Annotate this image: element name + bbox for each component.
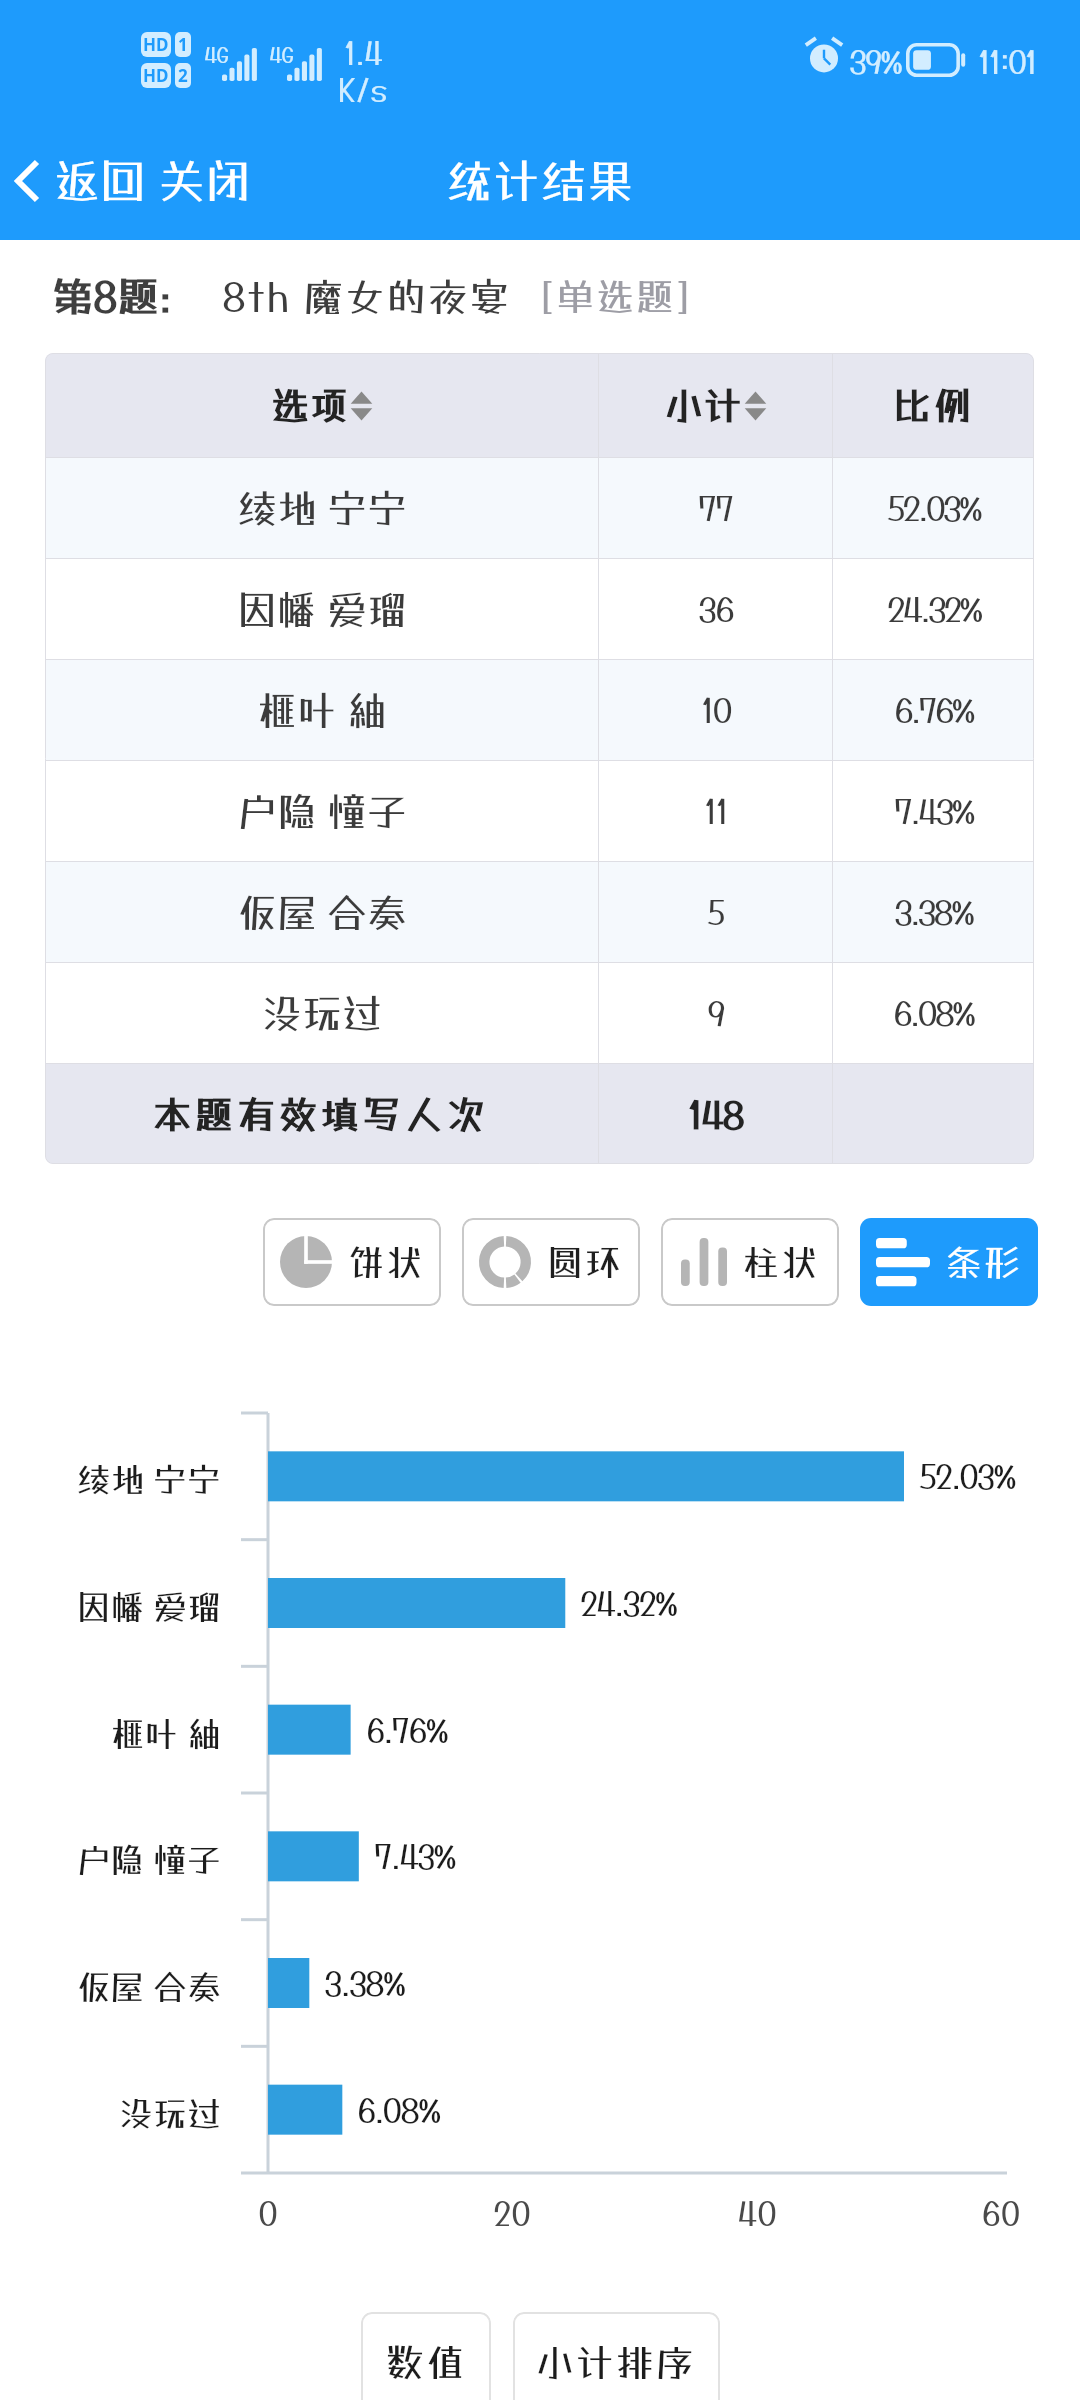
staticText: 52.03% [887, 488, 981, 528]
staticText: 7.43% [894, 791, 973, 831]
staticText: 条形 [946, 1241, 1023, 1283]
button[interactable]: 仮屋 合奏 [45, 862, 1034, 962]
staticText: 3.38% [894, 892, 973, 932]
staticText: 统计结果 [446, 154, 634, 208]
staticText: 圆环 [547, 1241, 624, 1283]
button[interactable]: 返回 [0, 142, 156, 220]
button[interactable]: 小计 [599, 353, 832, 457]
staticText: 24.32% [887, 589, 981, 629]
staticText: 因幡 爱瑠 [237, 586, 407, 633]
button[interactable]: 关闭 [149, 144, 261, 218]
staticText: 8th 魔女的夜宴 [222, 273, 511, 320]
staticText: HD [143, 64, 169, 87]
staticText: K/s [338, 72, 387, 109]
button[interactable]: 圆环 [462, 1218, 640, 1306]
button[interactable]: 绫地 宁宁 [45, 458, 1034, 558]
staticText: 11 [704, 791, 727, 831]
staticText: 户隐 憧子 [237, 788, 407, 835]
staticText: 仮屋 合奏 [21, 1967, 221, 2007]
staticText: 返回 [54, 154, 146, 208]
staticText: HD [143, 33, 169, 56]
staticText: 0 [228, 2194, 308, 2233]
button[interactable]: 榧叶 紬 [45, 660, 1034, 760]
staticText: 榧叶 紬 [257, 687, 387, 734]
other: Battery [906, 43, 968, 77]
staticText: 小计排序 [536, 2340, 697, 2385]
staticText: 比例 [894, 383, 973, 428]
staticText: 绫地 宁宁 [237, 485, 407, 532]
staticText: 4G [269, 41, 294, 67]
staticText: 6.76% [366, 1711, 447, 1750]
staticText: 20 [472, 2194, 552, 2233]
button[interactable]: 没玩过 [45, 963, 1034, 1063]
button[interactable]: 条形 [860, 1218, 1038, 1306]
staticText: 5 [707, 892, 724, 932]
other: Alarm [804, 36, 844, 76]
staticText: 本题有效填写人次 [153, 1092, 490, 1137]
button[interactable]: 饼状 [263, 1218, 441, 1306]
staticText: 没玩过 [262, 990, 382, 1037]
staticText: 4G [204, 41, 229, 67]
staticText: 小计 [665, 383, 744, 428]
staticText: 148 [688, 1092, 743, 1137]
staticText: 3.38% [324, 1964, 405, 2003]
other: 返回 [15, 159, 40, 203]
staticText: 9 [707, 993, 724, 1033]
staticText: 10 [701, 690, 731, 730]
staticText: 24.32% [580, 1584, 677, 1623]
staticText: 户隐 憧子 [21, 1840, 221, 1880]
staticText: 因幡 爱瑠 [21, 1587, 221, 1627]
staticText: 仮屋 合奏 [237, 889, 407, 936]
staticText: 数值 [386, 2340, 467, 2385]
staticText: 6.76% [894, 690, 973, 730]
staticText: 36 [698, 589, 733, 629]
staticText: [单选题] [535, 274, 698, 319]
staticText: 1.4 [344, 35, 382, 72]
staticText: 没玩过 [21, 2094, 221, 2134]
staticText: 榧叶 紬 [21, 1714, 221, 1754]
staticText: 第8题： [52, 272, 200, 320]
staticText: 40 [717, 2194, 797, 2233]
button[interactable]: 柱状 [661, 1218, 839, 1306]
staticText: 39% [849, 43, 902, 81]
staticText: 52.03% [919, 1457, 1015, 1496]
button[interactable]: 数值 [361, 2312, 491, 2400]
staticText: 2 [178, 64, 188, 87]
staticText: 11:01 [978, 43, 1036, 81]
staticText: 7.43% [374, 1837, 455, 1876]
staticText: 77 [698, 488, 733, 528]
staticText: 6.08% [357, 2091, 440, 2130]
button[interactable]: 选项 [45, 353, 598, 457]
staticText: 60 [961, 2194, 1041, 2233]
staticText: 柱状 [743, 1241, 820, 1283]
staticText: 饼状 [348, 1241, 425, 1283]
staticText: 绫地 宁宁 [21, 1460, 221, 1500]
staticText: 1 [178, 33, 188, 56]
staticText: 选项 [271, 383, 350, 428]
button[interactable]: 小计排序 [513, 2312, 720, 2400]
staticText: 6.08% [893, 993, 974, 1033]
staticText: 关闭 [159, 154, 251, 208]
button[interactable]: 因幡 爱瑠 [45, 559, 1034, 659]
button[interactable]: 户隐 憧子 [45, 761, 1034, 861]
